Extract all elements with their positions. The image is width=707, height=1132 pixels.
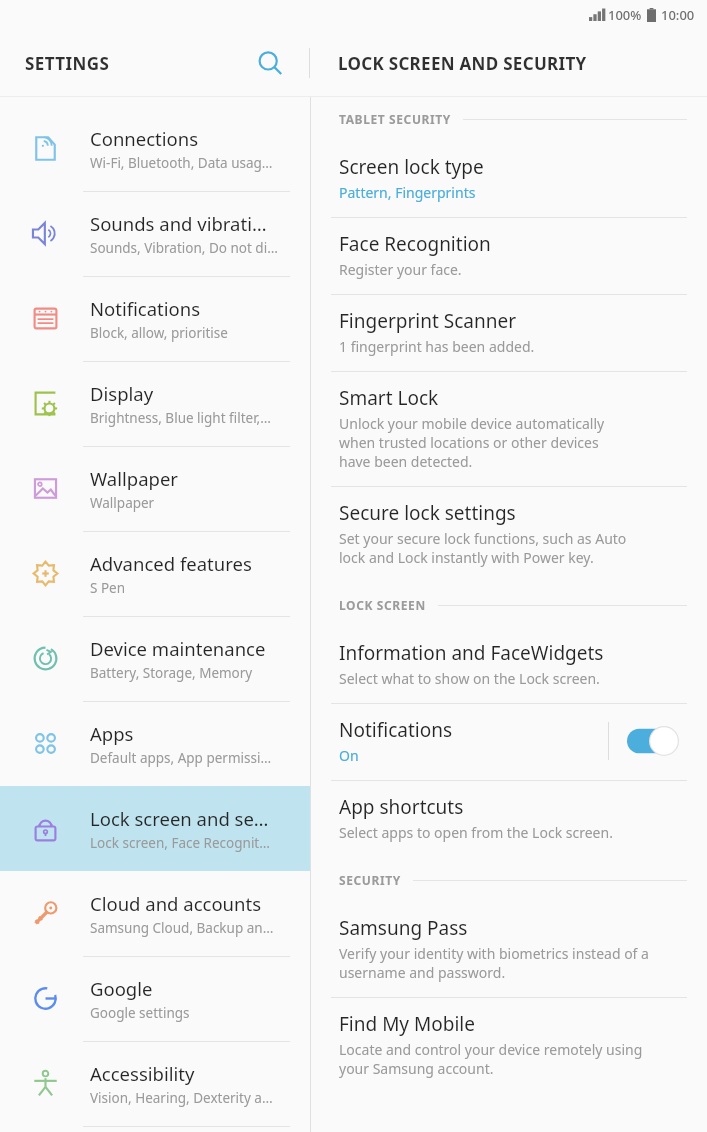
staticText: Unlock your mobile device automatically <box>339 414 605 433</box>
button[interactable]: Sounds and vibrati… <box>0 191 310 276</box>
staticText: Set your secure lock functions, such as … <box>339 529 627 548</box>
button[interactable]: Smart Lock <box>311 372 707 487</box>
staticText: Notifications <box>339 717 453 743</box>
staticText: Vision, Hearing, Dexterity a… <box>90 1089 273 1107</box>
staticText: Select what to show on the Lock screen. <box>339 669 600 688</box>
staticText: 100% <box>608 6 642 24</box>
staticText: Brightness, Blue light filter,… <box>90 409 271 427</box>
staticText: Register your face. <box>339 260 462 279</box>
staticText: Wi-Fi, Bluetooth, Data usag… <box>90 154 273 172</box>
staticText: Wallpaper <box>90 466 178 491</box>
staticText: Find My Mobile <box>339 1011 475 1037</box>
staticText: Notifications <box>90 296 201 321</box>
button[interactable]: Samsung Pass <box>311 902 707 998</box>
button[interactable]: Notifications toggle <box>627 726 679 756</box>
button[interactable]: Wallpaper <box>0 446 310 531</box>
staticText: Google <box>90 976 153 1001</box>
button[interactable]: Fingerprint Scanner <box>311 295 707 372</box>
button[interactable]: App shortcuts <box>311 781 707 858</box>
staticText: Smart Lock <box>339 385 439 411</box>
staticText: Device maintenance <box>90 636 266 661</box>
staticText: Sounds and vibrati… <box>90 211 267 236</box>
staticText: Google settings <box>90 1004 190 1022</box>
button[interactable]: Accessibility <box>0 1041 310 1126</box>
staticText: Lock screen and se… <box>90 806 269 831</box>
button[interactable]: Connections <box>0 106 310 191</box>
staticText: 1 fingerprint has been added. <box>339 337 535 356</box>
staticText: LOCK SCREEN AND SECURITY <box>338 52 587 75</box>
button[interactable]: Secure lock settings <box>311 487 707 583</box>
staticText: S Pen <box>90 579 126 597</box>
staticText: Cloud and accounts <box>90 891 262 916</box>
staticText: Secure lock settings <box>339 500 516 526</box>
button[interactable]: Apps <box>0 701 310 786</box>
staticText: Default apps, App permissi… <box>90 749 272 767</box>
staticText: Accessibility <box>90 1061 195 1086</box>
staticText: your Samsung account. <box>339 1059 494 1078</box>
staticText: Verify your identity with biometrics ins… <box>339 944 649 963</box>
button[interactable]: Notifications <box>0 276 310 361</box>
staticText: Display <box>90 381 154 406</box>
staticText: Battery, Storage, Memory <box>90 664 253 682</box>
staticText: LOCK SCREEN <box>339 597 426 613</box>
button[interactable]: Lock screen and se… <box>0 786 310 871</box>
staticText: 10:00 <box>661 6 695 24</box>
staticText: SETTINGS <box>25 52 110 75</box>
staticText: Block, allow, prioritise <box>90 324 228 342</box>
staticText: Fingerprint Scanner <box>339 308 516 334</box>
button[interactable]: Device maintenance <box>0 616 310 701</box>
button[interactable]: Face Recognition <box>311 218 707 295</box>
staticText: Face Recognition <box>339 231 491 257</box>
staticText: Apps <box>90 721 134 746</box>
staticText: Samsung Cloud, Backup an… <box>90 919 274 937</box>
staticText: On <box>339 746 359 765</box>
button[interactable]: Find My Mobile <box>311 998 707 1094</box>
staticText: Pattern, Fingerprints <box>339 183 476 202</box>
staticText: username and password. <box>339 963 506 982</box>
staticText: when trusted locations or other devices <box>339 433 599 452</box>
staticText: Connections <box>90 126 199 151</box>
button[interactable]: Display <box>0 361 310 446</box>
staticText: have been detected. <box>339 452 473 471</box>
staticText: Screen lock type <box>339 154 484 180</box>
button[interactable]: Google <box>0 956 310 1041</box>
staticText: TABLET SECURITY <box>339 111 451 127</box>
staticText: Select apps to open from the Lock screen… <box>339 823 613 842</box>
staticText: App shortcuts <box>339 794 464 820</box>
staticText: Samsung Pass <box>339 915 468 941</box>
staticText: Lock screen, Face Recognit… <box>90 834 270 852</box>
button[interactable]: Notifications <box>311 704 707 781</box>
staticText: Advanced features <box>90 551 252 576</box>
staticText: Wallpaper <box>90 494 155 512</box>
button[interactable]: Information and FaceWidgets <box>311 627 707 704</box>
staticText: lock and Lock instantly with Power key. <box>339 548 594 567</box>
button[interactable]: Cloud and accounts <box>0 871 310 956</box>
button[interactable]: Screen lock type <box>311 141 707 218</box>
staticText: Sounds, Vibration, Do not di… <box>90 239 278 257</box>
staticText: SECURITY <box>339 872 401 888</box>
staticText: Locate and control your device remotely … <box>339 1040 643 1059</box>
button[interactable]: Search <box>248 41 292 85</box>
button[interactable]: Advanced features <box>0 531 310 616</box>
staticText: Information and FaceWidgets <box>339 640 604 666</box>
